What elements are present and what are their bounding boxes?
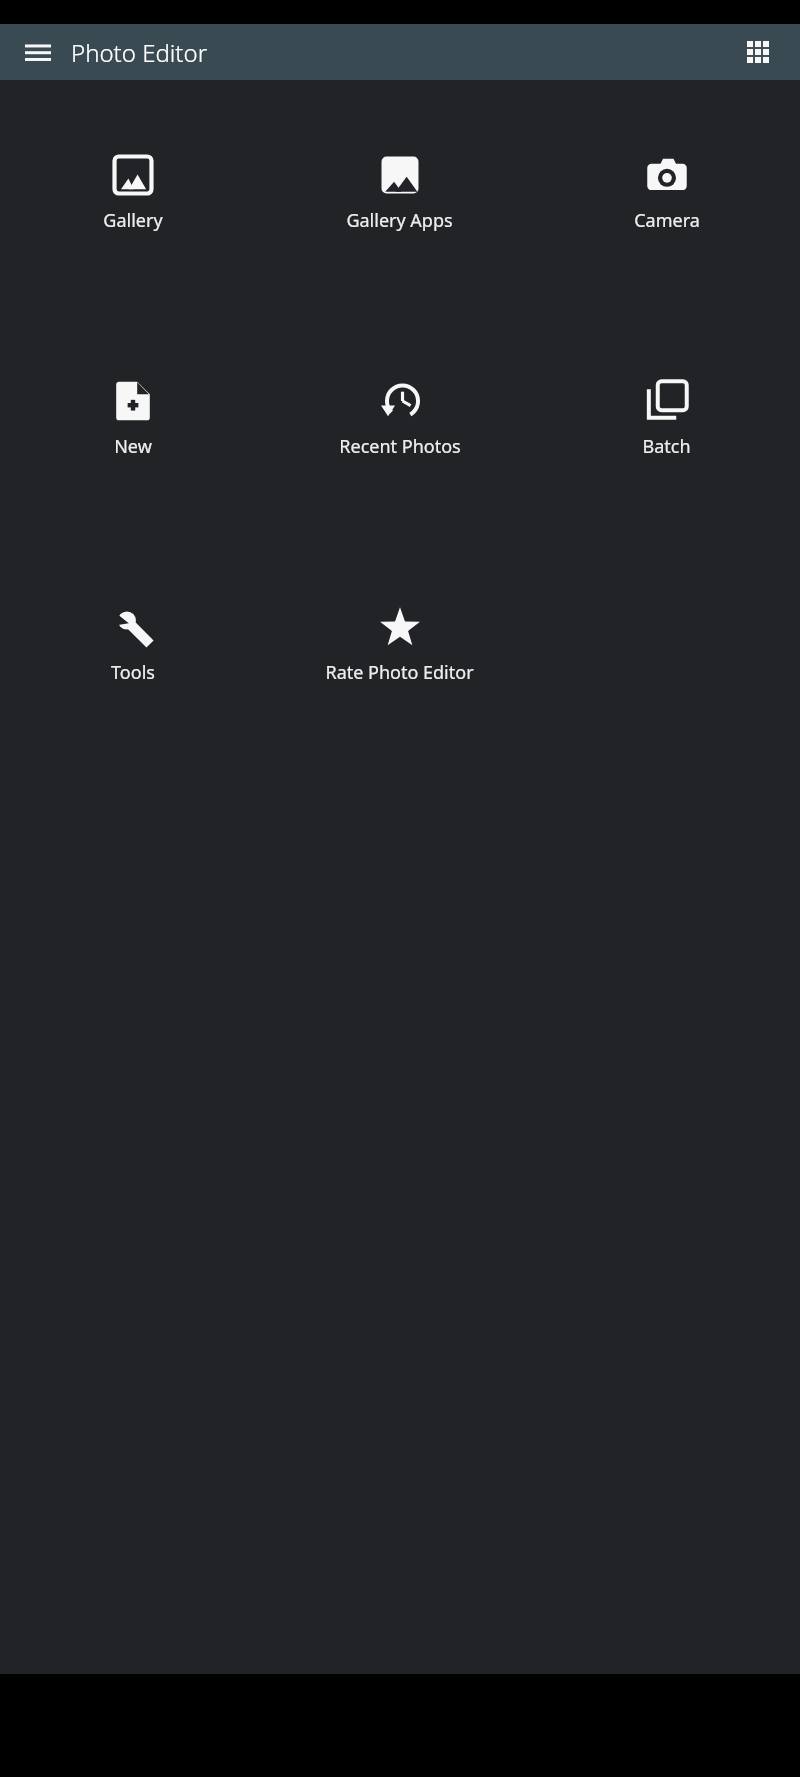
button[interactable]: Batch [533,376,800,463]
staticText: Photo Editor [71,36,208,69]
staticText: Batch [642,434,691,459]
staticText: Gallery Apps [346,208,453,233]
button[interactable]: New [0,376,266,463]
button[interactable]: Rate Photo Editor [266,602,533,689]
staticText: Tools [111,660,155,685]
button[interactable]: Recent Photos [266,376,533,463]
button[interactable]: Gallery Apps [266,150,533,237]
staticText: Gallery [103,208,163,233]
staticText: Rate Photo Editor [325,660,474,685]
button[interactable]: Open navigation menu [14,28,62,76]
staticText: Camera [634,208,700,233]
button[interactable]: Apps grid [734,28,782,76]
staticText: Recent Photos [339,434,461,459]
staticText: New [114,434,152,459]
button[interactable]: Gallery [0,150,266,237]
button[interactable]: Tools [0,602,266,689]
button[interactable]: Camera [533,150,800,237]
